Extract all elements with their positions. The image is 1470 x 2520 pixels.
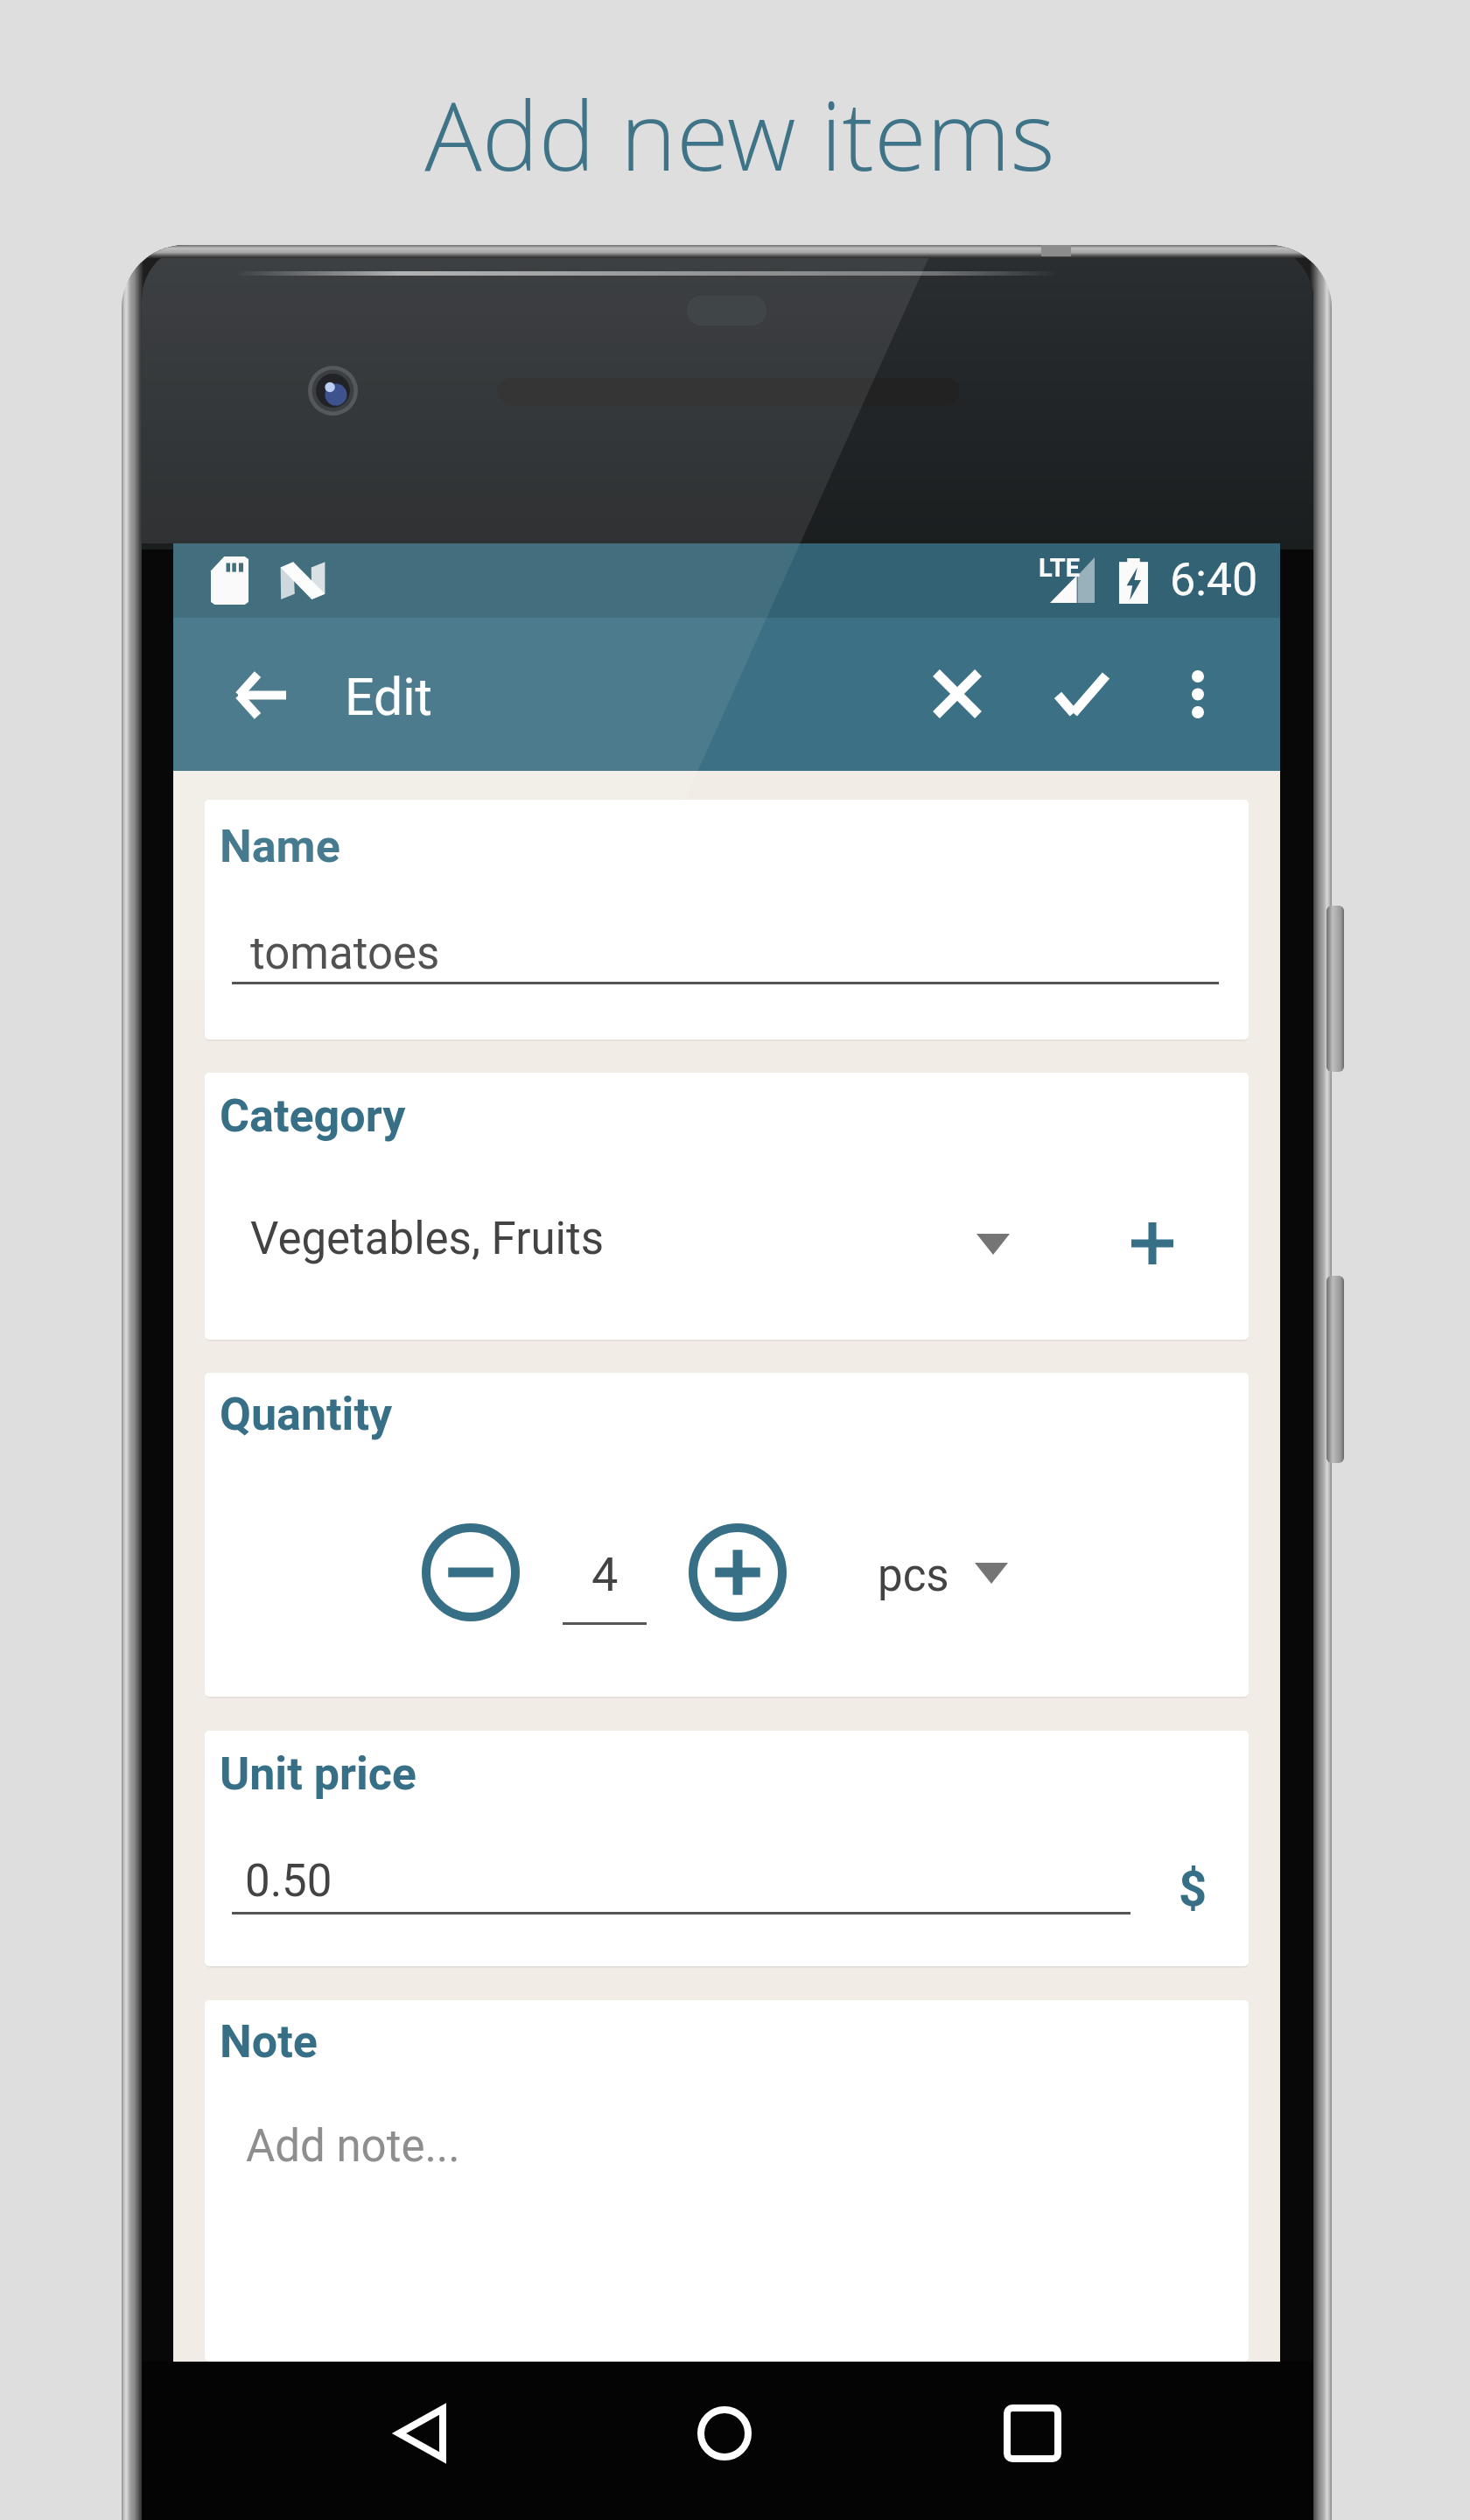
- button[interactable]: Decrease quantity: [409, 1511, 532, 1634]
- staticText: Add new items: [424, 68, 1055, 191]
- staticText: Unit price: [220, 1747, 416, 1801]
- staticText: tomatoes: [250, 927, 440, 980]
- button[interactable]: Category: [205, 1073, 1249, 1340]
- staticText: 4: [591, 1547, 619, 1602]
- button[interactable]: Quantity: [205, 1373, 1249, 1697]
- staticText: 6:40: [1170, 553, 1258, 606]
- staticText: $: [1179, 1860, 1207, 1918]
- staticText: Add note...: [246, 2120, 460, 2173]
- button[interactable]: Navigate back: [212, 646, 310, 744]
- staticText: pcs: [878, 1550, 949, 1602]
- button[interactable]: Back: [368, 2381, 473, 2486]
- button[interactable]: Recent apps: [980, 2381, 1085, 2486]
- staticText: LTE: [1039, 553, 1081, 583]
- button[interactable]: Increase quantity: [676, 1511, 799, 1634]
- staticText: Note: [220, 2015, 318, 2068]
- staticText: Edit: [345, 667, 432, 727]
- button[interactable]: Note: [205, 2000, 1249, 2362]
- button[interactable]: Select category: [941, 1199, 1046, 1290]
- staticText: Name: [220, 820, 340, 873]
- button[interactable]: Cancel: [908, 645, 1006, 743]
- button[interactable]: Add category: [1100, 1191, 1205, 1296]
- button[interactable]: Unit price: [205, 1731, 1249, 1966]
- button[interactable]: Save: [1032, 645, 1130, 743]
- staticText: Quantity: [220, 1388, 393, 1441]
- staticText: 0.50: [245, 1855, 332, 1907]
- button[interactable]: Select unit: [939, 1528, 1044, 1619]
- button[interactable]: Home: [672, 2381, 777, 2486]
- button[interactable]: Name: [205, 800, 1249, 1039]
- button[interactable]: More options: [1149, 645, 1247, 743]
- staticText: Category: [220, 1089, 406, 1143]
- staticText: Vegetables, Fruits: [250, 1213, 604, 1265]
